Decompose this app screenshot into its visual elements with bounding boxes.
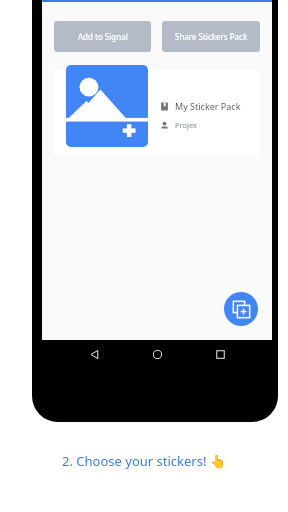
button[interactable]: Back bbox=[83, 343, 105, 365]
staticText: 2. Choose your stickers! 👆 bbox=[62, 452, 226, 470]
button[interactable]: Add to Signal bbox=[54, 21, 151, 52]
button[interactable]: Add sticker pack bbox=[224, 292, 258, 326]
button[interactable] bbox=[54, 70, 260, 157]
staticText: Projex bbox=[175, 120, 198, 130]
staticText: Add to Signal bbox=[78, 31, 128, 42]
staticText: My Sticker Pack bbox=[175, 100, 241, 112]
button[interactable]: Share Stickers Pack bbox=[162, 21, 260, 52]
staticText: Share Stickers Pack bbox=[175, 31, 248, 42]
button[interactable]: Home bbox=[146, 343, 168, 365]
button[interactable]: Recents bbox=[209, 343, 231, 365]
